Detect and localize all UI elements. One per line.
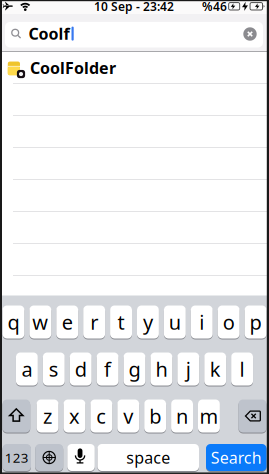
button[interactable]: y [137,305,159,338]
button[interactable]: j [177,352,199,385]
staticText: e [62,309,73,335]
button[interactable]: n [171,399,193,432]
staticText: r [90,309,98,335]
staticText: d [75,356,87,382]
staticText: j [186,356,191,382]
button[interactable]: w [29,305,51,338]
button[interactable]: Search [206,444,266,471]
staticText: Coolf [28,23,69,44]
button[interactable]: Clear text [243,27,257,41]
staticText: p [249,309,261,335]
staticText: i [199,309,204,335]
button[interactable]: c [90,399,112,432]
staticText: a [21,356,32,382]
button[interactable]: i [191,305,213,338]
staticText: f [104,356,111,382]
button[interactable]: t [110,305,132,338]
button[interactable]: space [97,444,199,471]
button[interactable]: x [63,399,85,432]
button[interactable]: Delete [238,399,266,432]
staticText: h [155,356,167,382]
staticText: b [149,403,161,429]
button[interactable]: q [2,305,24,338]
button[interactable]: d [70,352,92,385]
button[interactable]: Search field [5,22,263,47]
button[interactable]: Shift [2,399,30,432]
button[interactable]: k [204,352,226,385]
button[interactable]: a [16,352,38,385]
staticText: v [123,403,133,429]
staticText: x [69,403,80,429]
staticText: s [49,356,59,382]
button[interactable]: e [56,305,78,338]
staticText: n [176,403,188,429]
button[interactable]: CoolFolder [0,52,269,83]
button[interactable]: Next keyboard [35,444,63,471]
button[interactable]: m [198,399,220,432]
staticText: o [223,309,235,335]
button[interactable]: Dictate [67,444,95,471]
staticText: %46 [202,0,227,14]
staticText: Search [211,447,262,468]
button[interactable]: f [97,352,118,385]
staticText: w [32,309,48,335]
button[interactable]: b [144,399,166,432]
staticText: space [126,447,170,468]
button[interactable]: z [37,399,58,432]
staticText: 123 [5,449,29,466]
button[interactable]: g [123,352,145,385]
button[interactable]: l [231,352,253,385]
button[interactable]: p [245,305,266,338]
staticText: c [96,403,106,429]
button[interactable]: 123 [2,444,31,471]
staticText: k [210,356,221,382]
staticText: CoolFolder [30,57,116,78]
button[interactable]: u [164,305,186,338]
button[interactable]: h [150,352,172,385]
button[interactable]: r [83,305,105,338]
staticText: 10 Sep - 23:42 [94,0,174,14]
staticText: u [169,309,181,335]
staticText: t [117,309,124,335]
staticText: l [240,356,245,382]
staticText: g [128,356,140,382]
button[interactable]: s [43,352,65,385]
button[interactable]: v [117,399,139,432]
staticText: y [143,309,153,335]
staticText: q [7,309,19,335]
staticText: z [43,403,52,429]
button[interactable]: o [218,305,240,338]
staticText: m [199,403,218,429]
